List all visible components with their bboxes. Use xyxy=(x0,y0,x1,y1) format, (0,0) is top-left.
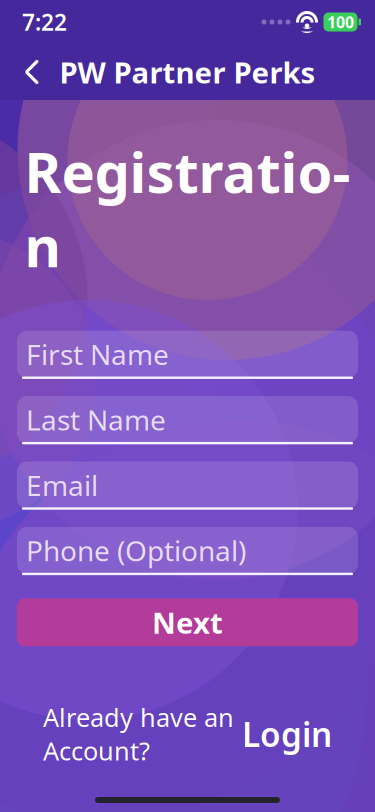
button[interactable]: Phone (Optional) xyxy=(17,527,358,576)
staticText: Email xyxy=(26,466,98,504)
staticText: 100 xyxy=(327,11,354,33)
button[interactable]: First Name xyxy=(17,331,358,380)
staticText: Login xyxy=(242,712,332,756)
button[interactable]: Next xyxy=(17,598,358,646)
button[interactable]: Last Name xyxy=(17,396,358,445)
button[interactable]: Already have an Account? xyxy=(17,694,358,774)
staticText: Phone (Optional) xyxy=(26,532,246,569)
staticText: Next xyxy=(152,603,223,642)
button[interactable]: Email xyxy=(17,461,358,511)
staticText: PW Partner Perks xyxy=(59,52,315,91)
button[interactable]: Back xyxy=(6,46,58,98)
staticText: First Name xyxy=(26,336,169,373)
staticText: Registration xyxy=(24,134,350,283)
staticText: Last Name xyxy=(26,401,166,438)
staticText: Already have an Account? xyxy=(43,700,234,768)
staticText: 7:22 xyxy=(22,7,67,37)
